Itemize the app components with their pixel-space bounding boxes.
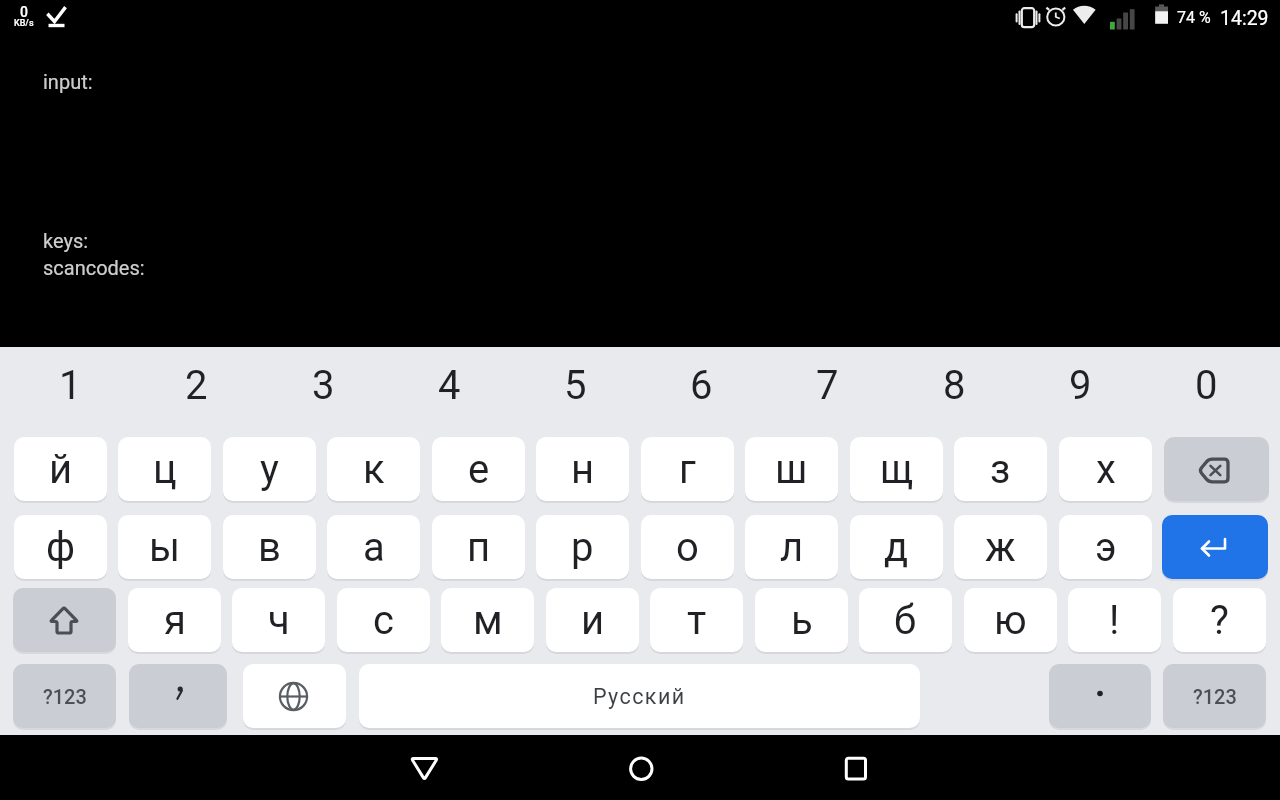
staticText: 0 (1195, 362, 1218, 409)
staticText: ! (1109, 597, 1120, 644)
staticText: ?123 (1193, 685, 1237, 708)
button[interactable]: ?123 (1163, 664, 1266, 728)
button[interactable]: о (641, 515, 734, 579)
staticText: б (894, 597, 917, 644)
button[interactable] (826, 744, 886, 794)
button[interactable]: ш (745, 437, 838, 501)
staticText: й (49, 446, 73, 493)
button[interactable]: р (536, 515, 629, 579)
button[interactable]: г (641, 437, 734, 501)
staticText: г (679, 446, 696, 493)
staticText: з (990, 446, 1011, 493)
staticText: ? (1210, 597, 1229, 644)
staticText: и (581, 597, 605, 644)
button[interactable]: 4 (386, 357, 512, 414)
staticText: 8 (943, 362, 966, 409)
staticText: ш (775, 446, 808, 493)
button[interactable]: п (432, 515, 525, 579)
staticText: 0 (20, 4, 28, 20)
button[interactable]: 0 (1143, 357, 1269, 414)
staticText: я (164, 597, 186, 644)
staticText: а (363, 524, 385, 571)
staticText: KB/s (14, 18, 34, 29)
button[interactable]: ф (14, 515, 107, 579)
staticText: л (780, 524, 804, 571)
staticText: о (676, 524, 699, 571)
button[interactable]: ч (232, 588, 325, 652)
button[interactable]: у (223, 437, 316, 501)
staticText: е (468, 446, 490, 493)
staticText: х (1096, 446, 1116, 493)
staticText: 5 (564, 362, 587, 409)
staticText: э (1095, 524, 1117, 571)
button[interactable]: ж (954, 515, 1047, 579)
button[interactable]: ю (964, 588, 1057, 652)
button[interactable]: ? (1173, 588, 1266, 652)
button[interactable]: ! (1068, 588, 1161, 652)
button[interactable]: е (432, 437, 525, 501)
button[interactable] (129, 664, 227, 728)
staticText: т (687, 597, 707, 644)
staticText: к (363, 446, 385, 493)
staticText: 7 (816, 362, 839, 409)
button[interactable]: н (536, 437, 629, 501)
button[interactable] (243, 664, 346, 728)
staticText: д (884, 524, 909, 571)
button[interactable]: х (1059, 437, 1152, 501)
button[interactable]: ц (118, 437, 211, 501)
staticText: ь (791, 597, 813, 644)
button[interactable] (13, 588, 116, 652)
staticText: 2 (185, 362, 208, 409)
button[interactable] (1162, 515, 1268, 579)
button[interactable]: 9 (1017, 357, 1143, 414)
staticText: 14:29 (1220, 7, 1269, 30)
button[interactable]: 7 (764, 357, 890, 414)
button[interactable]: 8 (891, 357, 1017, 414)
staticText: scancodes: (43, 256, 145, 279)
staticText: у (260, 446, 279, 493)
staticText: м (473, 597, 503, 644)
staticText: ы (149, 524, 181, 571)
staticText: 6 (690, 362, 713, 409)
button[interactable]: в (223, 515, 316, 579)
staticText: в (258, 524, 281, 571)
button[interactable]: з (954, 437, 1047, 501)
button[interactable]: с (337, 588, 430, 652)
button[interactable]: б (859, 588, 952, 652)
button[interactable]: л (745, 515, 838, 579)
staticText: н (571, 446, 595, 493)
button[interactable]: и (546, 588, 639, 652)
button[interactable]: 2 (133, 357, 259, 414)
staticText: с (373, 597, 394, 644)
staticText: 1 (59, 362, 82, 409)
staticText: ц (153, 446, 177, 493)
button[interactable]: ы (118, 515, 211, 579)
button[interactable] (1164, 437, 1269, 501)
button[interactable]: т (650, 588, 743, 652)
button[interactable]: й (14, 437, 107, 501)
button[interactable]: щ (850, 437, 943, 501)
staticText: ф (46, 524, 76, 571)
button[interactable] (611, 744, 671, 794)
button[interactable]: а (327, 515, 420, 579)
button[interactable]: ь (755, 588, 848, 652)
button[interactable]: 3 (260, 357, 386, 414)
button[interactable]: 6 (638, 357, 764, 414)
button[interactable]: к (327, 437, 420, 501)
button[interactable]: м (441, 588, 534, 652)
staticText: 9 (1069, 362, 1092, 409)
button[interactable]: 5 (512, 357, 638, 414)
button[interactable]: д (850, 515, 943, 579)
button[interactable]: э (1059, 515, 1152, 579)
button[interactable]: ?123 (13, 664, 116, 728)
staticText: 4 (438, 362, 461, 409)
staticText: щ (880, 446, 914, 493)
staticText: ?123 (43, 685, 87, 708)
button[interactable]: я (128, 588, 221, 652)
staticText: 74 % (1177, 8, 1211, 27)
button[interactable]: Русский (359, 664, 920, 728)
button[interactable] (395, 744, 455, 794)
staticText: ч (268, 597, 290, 644)
button[interactable] (1049, 664, 1151, 728)
button[interactable]: 1 (7, 357, 133, 414)
